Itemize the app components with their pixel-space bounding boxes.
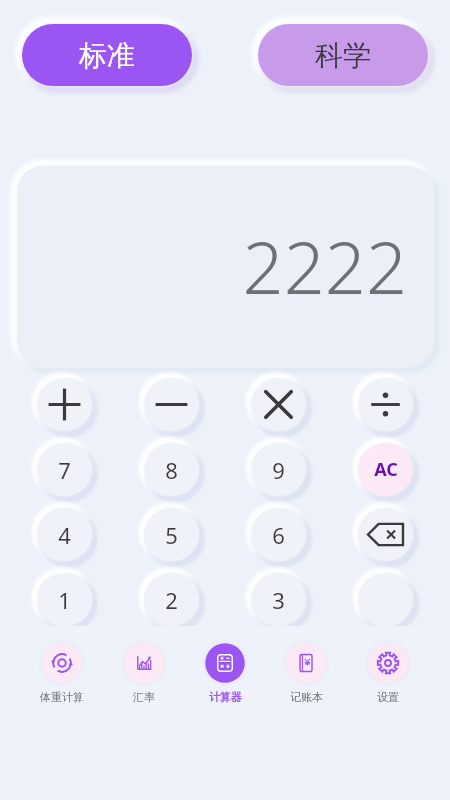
button[interactable]: Divide — [358, 378, 413, 431]
button[interactable]: 2 — [144, 573, 199, 626]
staticText: 4 — [58, 520, 71, 550]
staticText: 记账本 — [290, 690, 323, 704]
button[interactable]: 3 — [251, 573, 306, 626]
button[interactable]: Minus — [144, 378, 199, 431]
staticText: 6 — [272, 520, 285, 550]
staticText: 8 — [165, 455, 178, 485]
button[interactable]: Multiply — [251, 378, 306, 431]
button[interactable] — [358, 573, 413, 626]
staticText: 7 — [58, 455, 71, 485]
button[interactable]: 标准 — [22, 24, 192, 86]
button[interactable]: 4 — [37, 508, 92, 561]
staticText: 2 — [165, 585, 178, 615]
button[interactable]: AC — [358, 443, 413, 496]
staticText: 体重计算 — [40, 690, 84, 704]
button[interactable]: Plus — [37, 378, 92, 431]
staticText: 科学 — [315, 38, 371, 73]
staticText: 1 — [58, 585, 71, 615]
button[interactable]: 5 — [144, 508, 199, 561]
staticText: 设置 — [377, 690, 399, 704]
button[interactable]: Backspace — [358, 508, 413, 561]
button[interactable]: 记账本 — [283, 640, 329, 704]
button[interactable]: 设置 — [365, 640, 411, 704]
button[interactable]: 8 — [144, 443, 199, 496]
button[interactable]: 7 — [37, 443, 92, 496]
staticText: 9 — [272, 455, 285, 485]
button[interactable]: 1 — [37, 573, 92, 626]
button[interactable]: 计算器 — [202, 640, 248, 704]
staticText: 计算器 — [209, 690, 242, 704]
staticText: 5 — [165, 520, 178, 550]
button[interactable]: 9 — [251, 443, 306, 496]
staticText: 标准 — [79, 38, 135, 73]
button[interactable]: 体重计算 — [39, 640, 85, 704]
staticText: AC — [374, 457, 398, 482]
button[interactable]: 汇率 — [121, 640, 167, 704]
staticText: 汇率 — [133, 690, 155, 704]
button[interactable]: 科学 — [258, 24, 428, 86]
staticText: 3 — [272, 585, 285, 615]
button[interactable]: 6 — [251, 508, 306, 561]
staticText: 2222 — [242, 217, 407, 315]
